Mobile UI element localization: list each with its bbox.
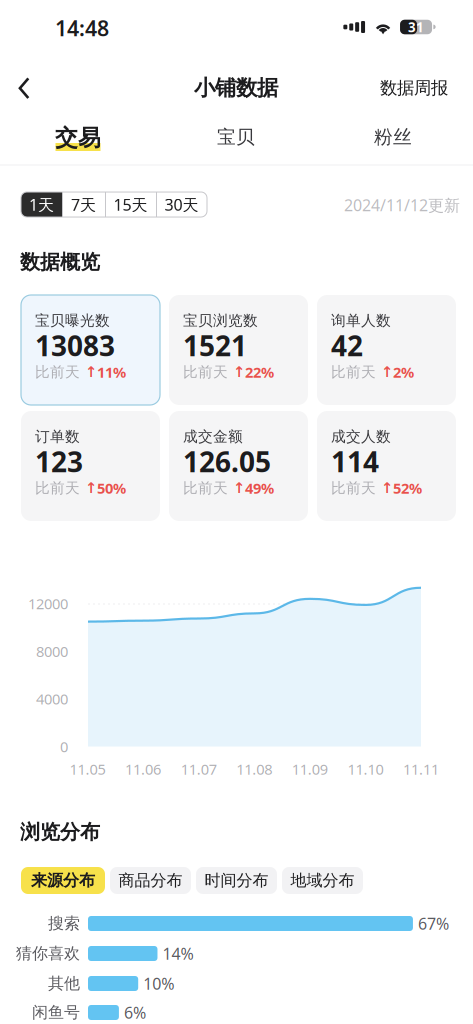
staticText: 订单数 [35,427,80,445]
staticText: 宝贝浏览数 [183,311,258,329]
staticText: 49% [245,478,274,498]
staticText: 4000 [36,689,68,709]
staticText: 8000 [36,641,68,661]
staticText: 比前天 [331,479,376,497]
staticText: 2024/11/12更新 [344,194,460,216]
staticText: 22% [245,362,274,382]
staticText: 11.09 [292,759,328,779]
button[interactable]: 30天 [156,192,207,217]
staticText: 地域分布 [290,871,354,890]
staticText: 6% [124,1002,146,1023]
staticText: 2% [393,362,414,382]
staticText: 浏览分布 [20,820,100,844]
staticText: 宝贝 [217,125,255,148]
staticText: 数据周报 [380,77,448,99]
button[interactable]: 询单人数 [317,295,456,405]
staticText: 12000 [28,594,68,613]
staticText: 42 [331,327,363,364]
button[interactable]: 来源分布 [21,867,105,894]
staticText: 31 [408,18,424,36]
staticText: 14% [162,943,193,964]
staticText: 小铺数据 [194,75,278,101]
staticText: 52% [393,478,422,498]
staticText: 询单人数 [331,311,391,329]
staticText: 成交人数 [331,427,391,445]
staticText: 11.06 [125,759,161,779]
staticText: ↑ [80,364,97,380]
staticText: 11.07 [181,759,217,779]
button[interactable]: 交易 [13,114,143,160]
staticText: 13083 [35,327,115,364]
button[interactable]: 宝贝 [176,115,296,159]
staticText: 时间分布 [204,871,268,890]
button[interactable]: 成交人数 [317,411,456,521]
staticText: 来源分布 [31,871,95,890]
staticText: 123 [35,443,83,480]
staticText: 14:48 [55,14,109,42]
staticText: ↑ [228,364,245,380]
button[interactable]: 7天 [62,192,105,217]
button[interactable]: 宝贝曝光数 [21,295,160,405]
staticText: ↑ [228,480,245,496]
staticText: 0 [60,737,68,756]
staticText: ↑ [376,480,393,496]
staticText: 15天 [113,194,147,215]
button[interactable]: 15天 [105,192,156,217]
button[interactable]: 1天 [21,192,62,217]
button[interactable]: 成交金额 [169,411,308,521]
button[interactable]: 数据周报 [371,66,457,110]
staticText: 猜你喜欢 [16,944,80,963]
staticText: 1521 [183,327,247,364]
staticText: ↑ [80,480,97,496]
button[interactable]: 地域分布 [282,867,363,894]
staticText: 30天 [164,194,198,215]
staticText: 10% [143,973,174,994]
staticText: 交易 [55,124,101,152]
staticText: 成交金额 [183,427,243,445]
staticText: 比前天 [35,363,80,381]
staticText: 搜索 [48,914,80,933]
staticText: 114 [331,443,379,480]
staticText: 11.11 [403,759,439,779]
staticText: 比前天 [331,363,376,381]
staticText: 比前天 [183,479,228,497]
staticText: 比前天 [35,479,80,497]
staticText: 商品分布 [118,871,182,890]
staticText: 126.05 [183,443,271,480]
staticText: 比前天 [183,363,228,381]
staticText: 闲鱼号 [32,1003,80,1022]
staticText: ↑ [376,364,393,380]
staticText: 50% [97,478,126,498]
button[interactable]: 订单数 [21,411,160,521]
staticText: 11.05 [69,759,105,779]
staticText: 11.10 [347,759,383,779]
button[interactable]: 宝贝浏览数 [169,295,308,405]
staticText: 数据概览 [20,250,100,274]
staticText: 11% [97,362,126,382]
button[interactable]: 时间分布 [196,867,277,894]
button[interactable]: 粉丝 [333,115,453,159]
staticText: 粉丝 [374,125,412,148]
staticText: 7天 [71,194,96,215]
staticText: 宝贝曝光数 [35,311,110,329]
button[interactable]: Back [2,66,46,110]
button[interactable]: 商品分布 [110,867,191,894]
staticText: 11.08 [236,759,272,779]
staticText: 其他 [48,974,80,993]
staticText: 1天 [29,194,54,215]
staticText: 67% [418,913,449,934]
